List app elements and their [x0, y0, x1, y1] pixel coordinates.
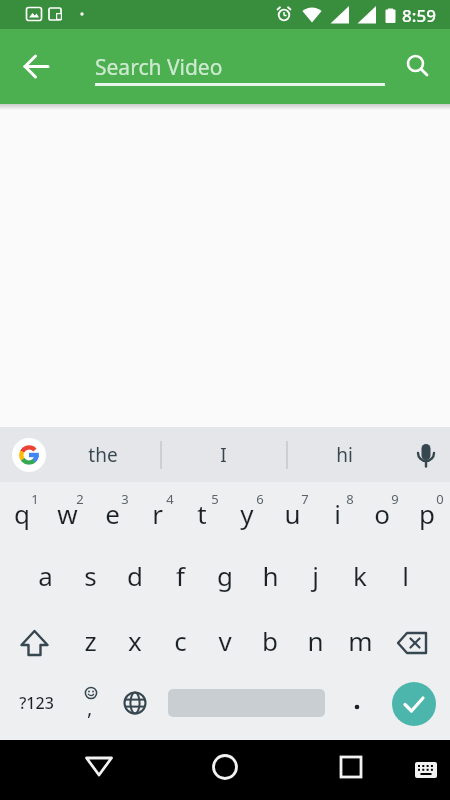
- staticText: z: [84, 623, 97, 658]
- button[interactable]: r: [135, 487, 179, 539]
- staticText: k: [353, 558, 367, 593]
- staticText: t: [197, 496, 207, 531]
- button[interactable]: [8, 617, 64, 669]
- button[interactable]: [12, 42, 60, 90]
- staticText: the: [88, 442, 118, 468]
- staticText: v: [218, 623, 232, 658]
- button[interactable]: q: [0, 487, 44, 539]
- button[interactable]: i: [315, 487, 359, 539]
- button[interactable]: [111, 679, 159, 727]
- staticText: 1: [31, 490, 39, 508]
- staticText: x: [128, 623, 142, 658]
- staticText: 3: [121, 490, 129, 508]
- staticText: j: [312, 558, 319, 593]
- button[interactable]: [12, 438, 46, 472]
- button[interactable]: [404, 748, 448, 792]
- staticText: s: [84, 558, 97, 593]
- staticText: 4: [166, 490, 174, 508]
- button[interactable]: n: [293, 614, 337, 666]
- button[interactable]: [392, 682, 436, 726]
- staticText: f: [176, 558, 185, 593]
- staticText: 8:59: [402, 4, 436, 27]
- staticText: h: [262, 558, 279, 593]
- button[interactable]: l: [383, 549, 427, 601]
- button[interactable]: [386, 617, 442, 669]
- button[interactable]: z: [68, 614, 112, 666]
- staticText: hi: [336, 442, 353, 468]
- button[interactable]: f: [158, 549, 202, 601]
- button[interactable]: [200, 742, 250, 792]
- staticText: 9: [391, 490, 399, 508]
- button[interactable]: ?123: [6, 679, 66, 727]
- button[interactable]: the: [58, 435, 148, 475]
- staticText: 5: [211, 490, 219, 508]
- button[interactable]: m: [338, 614, 382, 666]
- button[interactable]: p: [405, 487, 449, 539]
- button[interactable]: k: [338, 549, 382, 601]
- button[interactable]: [326, 742, 376, 792]
- button[interactable]: a: [23, 549, 67, 601]
- staticText: I: [220, 442, 227, 468]
- staticText: w: [57, 496, 78, 531]
- staticText: y: [240, 496, 254, 531]
- staticText: u: [284, 496, 301, 531]
- button[interactable]: g: [203, 549, 247, 601]
- button[interactable]: b: [248, 614, 292, 666]
- button[interactable]: u: [270, 487, 314, 539]
- button[interactable]: s: [68, 549, 112, 601]
- button[interactable]: w: [45, 487, 89, 539]
- button[interactable]: v: [203, 614, 247, 666]
- staticText: m: [348, 623, 373, 658]
- button[interactable]: [404, 433, 448, 477]
- staticText: g: [217, 558, 233, 593]
- button[interactable]: t: [180, 487, 224, 539]
- staticText: 6: [256, 490, 264, 508]
- staticText: 8: [346, 490, 354, 508]
- staticText: 0: [436, 490, 444, 508]
- staticText: i: [334, 496, 341, 531]
- staticText: d: [127, 558, 143, 593]
- button[interactable]: [394, 42, 442, 90]
- staticText: ,: [87, 694, 93, 721]
- button[interactable]: [74, 742, 124, 792]
- staticText: Search Video: [95, 53, 223, 82]
- staticText: a: [38, 558, 53, 593]
- staticText: b: [262, 623, 278, 658]
- staticText: n: [307, 623, 324, 658]
- button[interactable]: c: [158, 614, 202, 666]
- staticText: l: [402, 558, 409, 593]
- staticText: q: [14, 496, 30, 531]
- button[interactable]: x: [113, 614, 157, 666]
- staticText: r: [152, 496, 163, 531]
- staticText: o: [374, 496, 390, 531]
- staticText: e: [105, 496, 120, 531]
- staticText: p: [419, 496, 435, 531]
- button[interactable]: h: [248, 549, 292, 601]
- staticText: 7: [301, 490, 309, 508]
- staticText: c: [174, 623, 187, 658]
- button[interactable]: [337, 679, 377, 727]
- button[interactable]: j: [293, 549, 337, 601]
- button[interactable]: I: [178, 435, 268, 475]
- staticText: ?123: [19, 692, 54, 714]
- button[interactable]: e: [90, 487, 134, 539]
- button[interactable]: o: [360, 487, 404, 539]
- staticText: 2: [76, 490, 84, 508]
- button[interactable]: ,: [66, 679, 114, 727]
- button[interactable]: hi: [299, 435, 389, 475]
- button[interactable]: y: [225, 487, 269, 539]
- button[interactable]: d: [113, 549, 157, 601]
